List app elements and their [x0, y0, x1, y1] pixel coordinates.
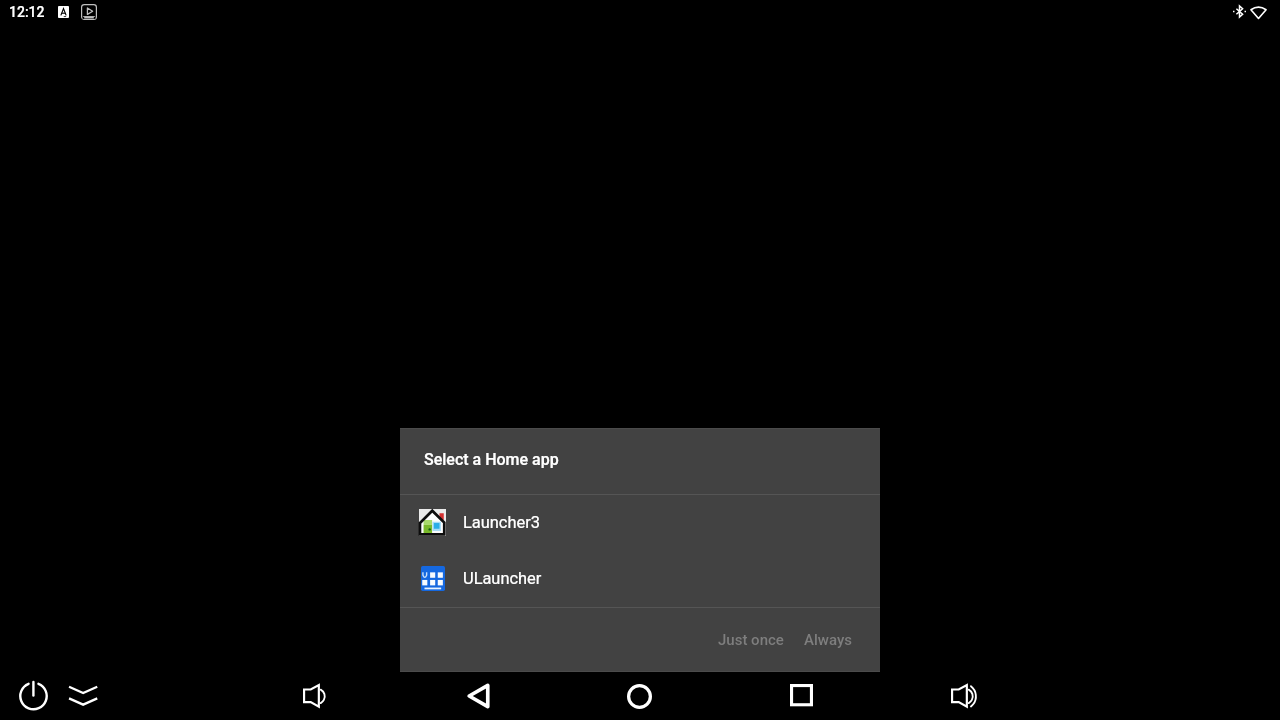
button[interactable]: Home: [627, 684, 652, 709]
button[interactable]: Launcher3: [400, 494, 880, 550]
button[interactable]: Recents: [790, 684, 813, 707]
staticText: Launcher3: [463, 513, 540, 532]
button[interactable]: Power: [19, 681, 48, 710]
button[interactable]: Volume up: [948, 682, 978, 712]
button[interactable]: Just once: [708, 619, 794, 661]
staticText: ULauncher: [463, 569, 542, 588]
button[interactable]: Back: [462, 680, 493, 711]
staticText: Always: [804, 631, 852, 649]
staticText: Just once: [718, 631, 784, 649]
button[interactable]: Volume down: [68, 682, 98, 712]
staticText: Select a Home app: [424, 450, 559, 469]
staticText: 12:12: [9, 4, 45, 20]
button[interactable]: ULauncher: [400, 550, 880, 606]
button[interactable]: Always: [794, 619, 862, 661]
button[interactable]: Volume: [300, 682, 330, 712]
